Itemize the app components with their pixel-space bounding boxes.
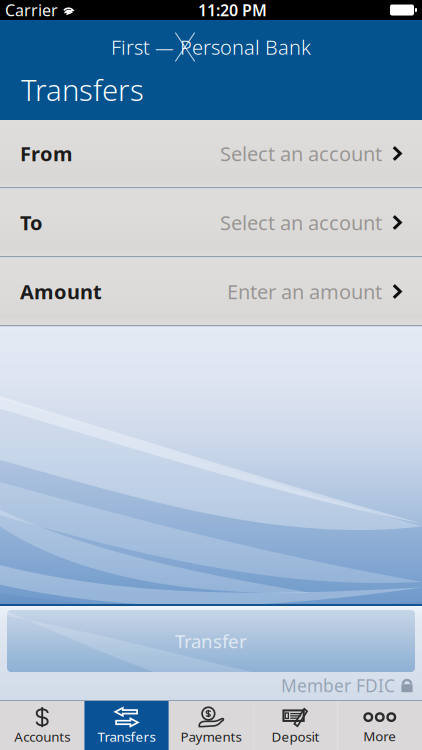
- button[interactable]: Deposit: [253, 701, 338, 750]
- staticText: More: [363, 727, 396, 745]
- staticText: Select an account: [220, 209, 382, 236]
- staticText: —: [150, 35, 174, 59]
- button[interactable]: More: [338, 701, 422, 750]
- staticText: First: [111, 34, 150, 60]
- staticText: Transfer: [175, 629, 247, 653]
- staticText: Amount: [20, 278, 102, 305]
- button[interactable]: Transfers: [84, 701, 169, 750]
- staticText: Enter an amount: [227, 278, 382, 305]
- staticText: Transfers: [98, 728, 156, 745]
- staticText: Carrier: [5, 0, 58, 21]
- staticText: Personal Bank: [180, 34, 311, 60]
- staticText: Accounts: [14, 728, 70, 745]
- staticText: Deposit: [271, 728, 319, 745]
- button[interactable]: Transfer: [7, 610, 415, 672]
- button[interactable]: From: [0, 120, 422, 187]
- staticText: To: [20, 209, 43, 236]
- button[interactable]: To: [0, 189, 422, 256]
- button[interactable]: Payments: [169, 701, 253, 750]
- button[interactable]: Accounts: [0, 701, 84, 750]
- staticText: Select an account: [220, 140, 382, 167]
- staticText: Member FDIC: [281, 674, 395, 697]
- staticText: Payments: [180, 728, 241, 745]
- staticText: Transfers: [21, 70, 144, 109]
- button[interactable]: Amount: [0, 258, 422, 325]
- staticText: 11:20 PM: [198, 0, 267, 21]
- staticText: From: [20, 140, 73, 167]
